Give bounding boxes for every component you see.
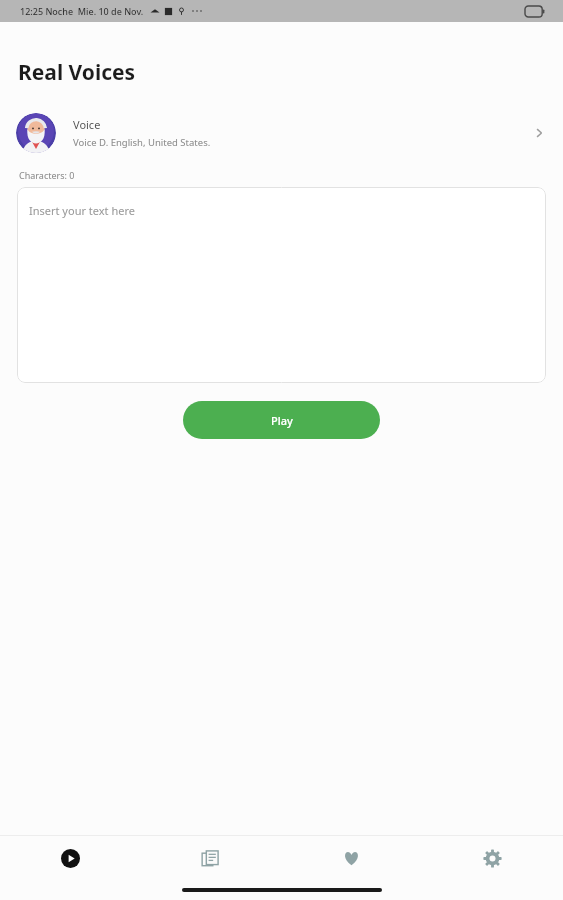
button[interactable]: Library [140,836,281,880]
button[interactable]: Play [183,401,380,439]
staticText: Voice [73,117,101,132]
staticText: Insert your text here [29,203,135,218]
staticText: Real Voices [18,58,136,87]
button[interactable]: Play [0,836,140,880]
button[interactable]: Voice [0,107,563,159]
other: Select voice [531,125,547,141]
button[interactable]: Settings [422,836,563,880]
button[interactable]: Favorites [281,836,422,880]
staticText: Characters: 0 [19,169,75,181]
button[interactable]: Insert your text here [17,187,546,383]
staticText: Play [271,413,293,428]
staticText: 12:25 Noche Mie. 10 de Nov. [20,5,144,17]
staticText: Voice D. English, United States. [73,136,211,149]
